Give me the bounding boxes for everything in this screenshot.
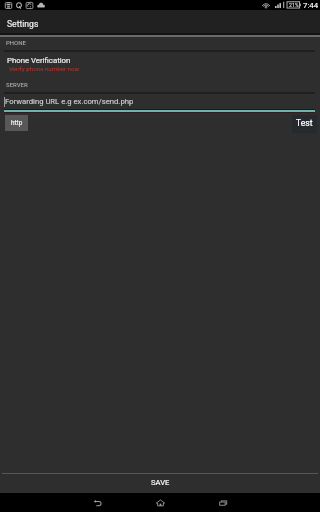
staticText: 21%: [289, 2, 299, 8]
button[interactable]: http: [5, 115, 28, 131]
staticText: Settings: [7, 19, 39, 29]
staticText: Phone Verification: [7, 56, 71, 65]
staticText: 7:44: [303, 1, 319, 10]
button[interactable]: Home: [129, 493, 192, 512]
staticText: Test: [296, 118, 313, 128]
staticText: PHONE: [6, 39, 26, 46]
button[interactable]: Recent apps: [192, 493, 255, 512]
button[interactable]: Settings: [0, 10, 320, 33]
staticText: Forwarding URL e.g ex.com/send.php: [5, 97, 134, 106]
staticText: Verify phone number now: [9, 65, 80, 72]
button[interactable]: Phone Verification: [0, 52, 320, 74]
button[interactable]: Test: [292, 115, 317, 133]
button[interactable]: Back: [66, 493, 129, 512]
staticText: SERVER: [6, 81, 28, 88]
button[interactable]: SAVE: [0, 473, 320, 493]
staticText: SAVE: [151, 478, 170, 487]
staticText: http: [11, 119, 23, 127]
